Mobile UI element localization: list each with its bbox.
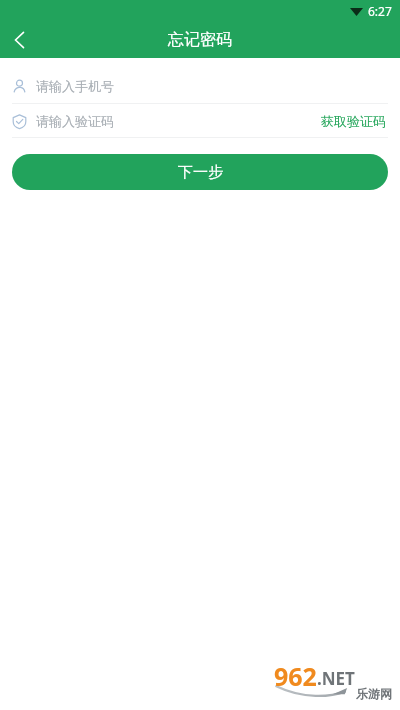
button[interactable]: 请输入验证码 bbox=[12, 113, 319, 129]
button[interactable]: 下一步 bbox=[12, 154, 388, 190]
staticText: 乐游网 bbox=[356, 686, 392, 701]
staticText: .NET bbox=[317, 667, 355, 690]
staticText: 获取验证码 bbox=[321, 113, 386, 129]
staticText: 下一步 bbox=[178, 163, 223, 182]
staticText: 962 bbox=[274, 659, 317, 693]
staticText: 6:27 bbox=[368, 3, 392, 19]
staticText: 请输入手机号 bbox=[36, 78, 114, 94]
button[interactable]: 请输入手机号 bbox=[12, 69, 388, 103]
button[interactable]: Back bbox=[0, 22, 40, 58]
button[interactable]: 获取验证码 bbox=[319, 109, 388, 133]
staticText: 请输入验证码 bbox=[36, 113, 114, 129]
staticText: 忘记密码 bbox=[168, 30, 232, 50]
